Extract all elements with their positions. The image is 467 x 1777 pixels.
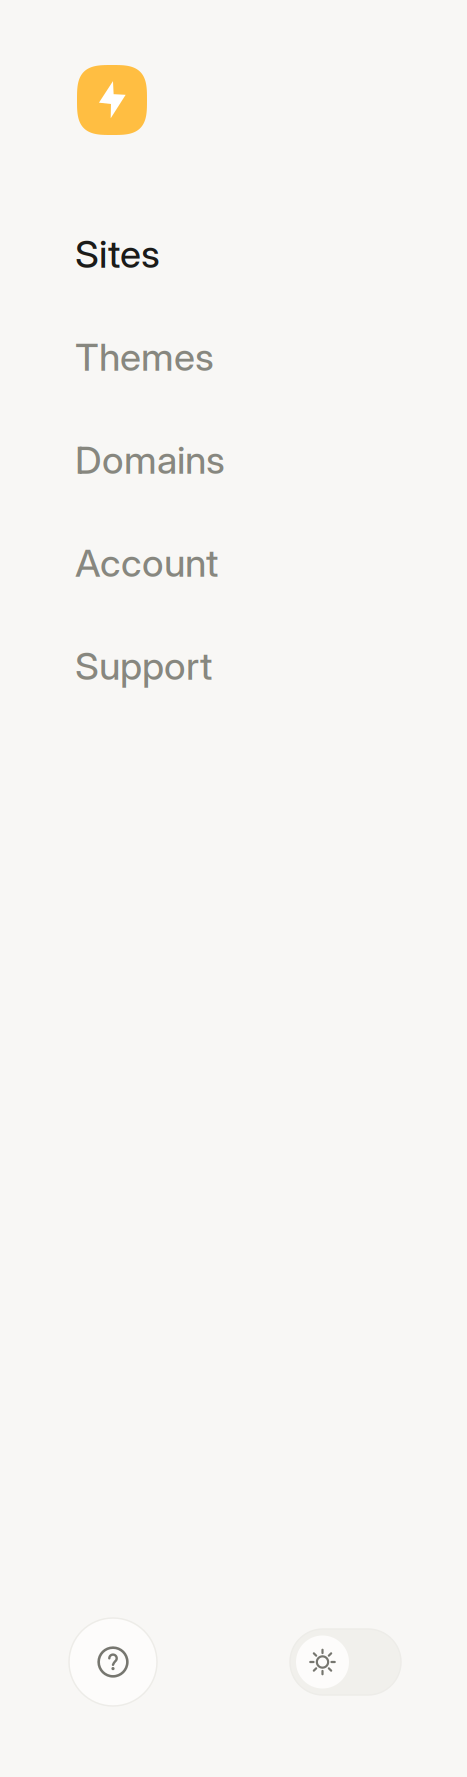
button[interactable]: Toggle appearance: [290, 1629, 401, 1695]
staticText: Themes: [75, 334, 214, 380]
staticText: Account: [75, 540, 218, 586]
button[interactable]: Help: [69, 1618, 157, 1706]
button[interactable]: Home: [77, 65, 147, 135]
button[interactable]: Account: [0, 532, 467, 594]
staticText: Support: [75, 643, 212, 689]
button[interactable]: Themes: [0, 326, 467, 388]
button[interactable]: Domains: [0, 429, 467, 491]
button[interactable]: Sites: [0, 223, 467, 285]
staticText: Domains: [75, 437, 225, 483]
button[interactable]: Support: [0, 635, 467, 697]
staticText: Sites: [75, 231, 160, 277]
